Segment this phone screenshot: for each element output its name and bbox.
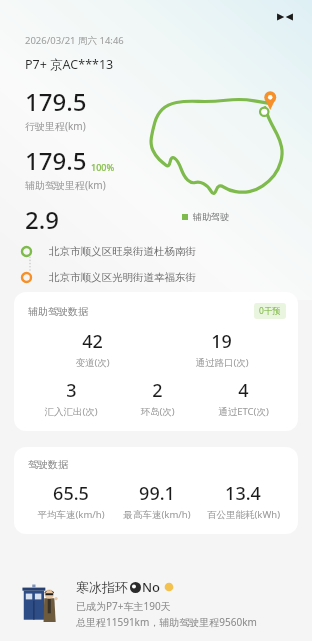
staticText: 最高车速(km/h) <box>123 508 191 521</box>
staticText: 驾驶数据 <box>28 458 68 471</box>
staticText: No <box>142 578 161 596</box>
staticText: 19 <box>211 329 232 354</box>
staticText: 变道(次) <box>75 356 110 369</box>
button[interactable]: 13.4 <box>200 481 286 521</box>
staticText: 3 <box>66 378 77 403</box>
staticText: 寒冰指环 <box>76 579 128 595</box>
staticText: 辅助驾驶 <box>193 211 229 222</box>
staticText: 总里程11591km，辅助驾驶里程9560km <box>76 615 257 629</box>
button[interactable]: 19 <box>157 329 286 369</box>
staticText: 2.9 <box>25 203 59 230</box>
button[interactable]: Close <box>270 2 300 32</box>
button[interactable]: 99.1 <box>114 481 200 521</box>
staticText: P7+ 京AC***13 <box>25 56 114 73</box>
staticText: 179.5 <box>25 85 87 118</box>
staticText: 通过ETC(次) <box>218 405 269 418</box>
staticText: 北京市顺义区光明街道幸福东街 <box>49 271 196 284</box>
button[interactable]: 辅助驾驶数据 <box>14 292 298 431</box>
staticText: 已成为P7+车主190天 <box>76 599 171 613</box>
staticText: 2026/03/21 周六 14:46 <box>25 34 124 47</box>
button[interactable]: 驾驶数据 <box>14 447 298 534</box>
staticText: 通过路口(次) <box>195 356 249 369</box>
staticText: 汇入汇出(次) <box>44 405 98 418</box>
staticText: 北京市顺义区旺泉街道杜杨南街 <box>49 245 196 258</box>
staticText: 179.5 <box>25 144 87 177</box>
staticText: 辅助驾驶里程(km) <box>25 178 106 192</box>
button[interactable]: 4 <box>200 378 286 418</box>
button[interactable]: 北京市顺义区光明街道幸福东街 <box>22 267 312 288</box>
staticText: 环岛(次) <box>140 405 175 418</box>
staticText: 100% <box>91 161 115 173</box>
staticText: 百公里能耗(kWh) <box>207 508 280 521</box>
staticText: 13.4 <box>225 481 261 506</box>
staticText: 平均车速(km/h) <box>37 508 105 521</box>
button[interactable]: 3 <box>28 378 114 418</box>
staticText: 4 <box>238 378 249 403</box>
button[interactable]: 65.5 <box>28 481 114 521</box>
staticText: 99.1 <box>139 481 175 506</box>
staticText: 辅助驾驶数据 <box>28 305 88 318</box>
button[interactable]: 寒冰指环 <box>0 565 312 641</box>
staticText: 2 <box>152 378 163 403</box>
staticText: 42 <box>82 329 103 354</box>
staticText: 65.5 <box>53 481 89 506</box>
staticText: 0干预 <box>259 305 281 317</box>
button[interactable]: 42 <box>28 329 157 369</box>
button[interactable]: 北京市顺义区旺泉街道杜杨南街 <box>22 240 312 262</box>
button[interactable]: 2 <box>114 378 200 418</box>
staticText: 行驶里程(km) <box>25 119 86 133</box>
